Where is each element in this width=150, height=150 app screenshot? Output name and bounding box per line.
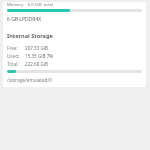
staticText: Memory 6.0 GiB total bbox=[7, 2, 53, 8]
staticText: 222.68 GiB bbox=[25, 61, 49, 67]
staticText: 15.35 GiB 7% bbox=[25, 53, 54, 59]
button[interactable]: Free: bbox=[7, 45, 142, 51]
staticText: 6 GB LPDDR4X bbox=[7, 16, 42, 23]
staticText: 207.33 GiB bbox=[25, 45, 49, 51]
other: Memory usage bbox=[7, 9, 142, 12]
staticText: Total: bbox=[7, 61, 25, 67]
staticText: Used: bbox=[7, 53, 25, 59]
button[interactable]: Total: bbox=[7, 61, 142, 67]
staticText: Internal Storage bbox=[7, 32, 53, 40]
staticText: Free: bbox=[7, 45, 25, 51]
button[interactable]: Memory 6.0 GiB total bbox=[3, 2, 146, 87]
other: Internal storage usage bbox=[7, 70, 142, 73]
staticText: /storage/emulated/0 bbox=[7, 77, 52, 83]
button[interactable]: Used: bbox=[7, 53, 142, 59]
